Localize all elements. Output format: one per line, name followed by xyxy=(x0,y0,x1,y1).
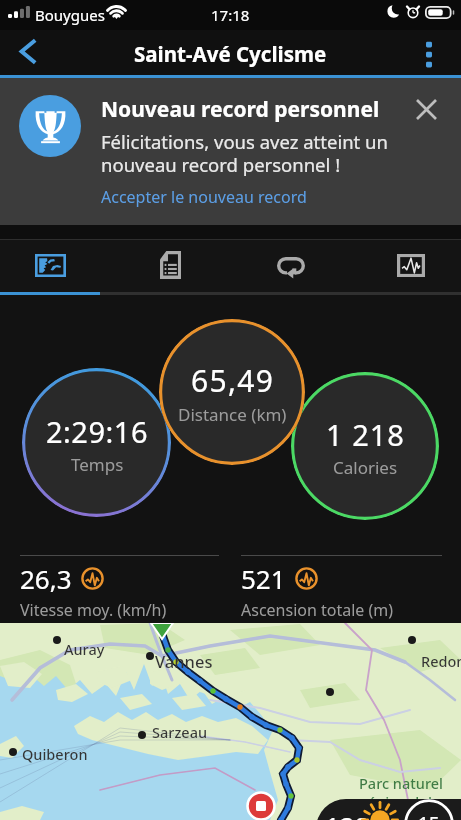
staticText: régional de xyxy=(362,792,441,812)
button[interactable]: Back xyxy=(0,30,50,78)
button[interactable]: Map xyxy=(0,240,100,292)
staticText: Redon xyxy=(421,651,461,671)
staticText: 521 xyxy=(241,561,286,596)
staticText: Quiberon xyxy=(22,744,88,764)
button[interactable]: 1 218 xyxy=(291,372,439,520)
staticText: Vannes xyxy=(155,650,213,672)
button[interactable]: Close xyxy=(408,91,444,127)
staticText: 128 xyxy=(325,808,370,820)
button[interactable]: 65,49 xyxy=(159,319,305,465)
button[interactable]: 26,3 xyxy=(20,555,219,621)
button[interactable]: More options xyxy=(411,30,461,78)
staticText: 17:18 xyxy=(211,5,250,25)
staticText: Parc naturel xyxy=(359,773,443,793)
staticText: Distance (km) xyxy=(178,403,287,426)
button[interactable]: Accepter le nouveau record xyxy=(101,186,307,208)
staticText: Ascension totale (m) xyxy=(241,599,394,621)
staticText: Bouygues xyxy=(35,5,105,25)
button[interactable]: Graphs xyxy=(342,240,461,292)
staticText: Calories xyxy=(333,456,398,479)
staticText: Saint-Avé Cyclisme xyxy=(134,40,327,68)
staticText: 2:29:16 xyxy=(46,412,148,451)
staticText: Temps xyxy=(71,453,124,476)
button[interactable]: 2:29:16 xyxy=(22,368,171,517)
staticText: Sarzeau xyxy=(152,722,208,742)
staticText: Félicitations, vous avez atteint un nouv… xyxy=(101,129,388,178)
staticText: 26,3 xyxy=(20,561,72,596)
staticText: Accepter le nouveau record xyxy=(101,186,307,208)
button[interactable]: Laps xyxy=(240,240,342,292)
staticText: Nouveau record personnel xyxy=(101,95,380,124)
button[interactable]: Details xyxy=(100,240,240,292)
staticText: 1 218 xyxy=(326,415,405,454)
staticText: 15 xyxy=(418,811,440,820)
staticText: 65,49 xyxy=(191,360,275,401)
staticText: Auray xyxy=(64,639,105,659)
staticText: Vitesse moy. (km/h) xyxy=(20,599,167,621)
button[interactable]: 521 xyxy=(241,555,442,621)
button[interactable]: Weather xyxy=(316,799,461,820)
